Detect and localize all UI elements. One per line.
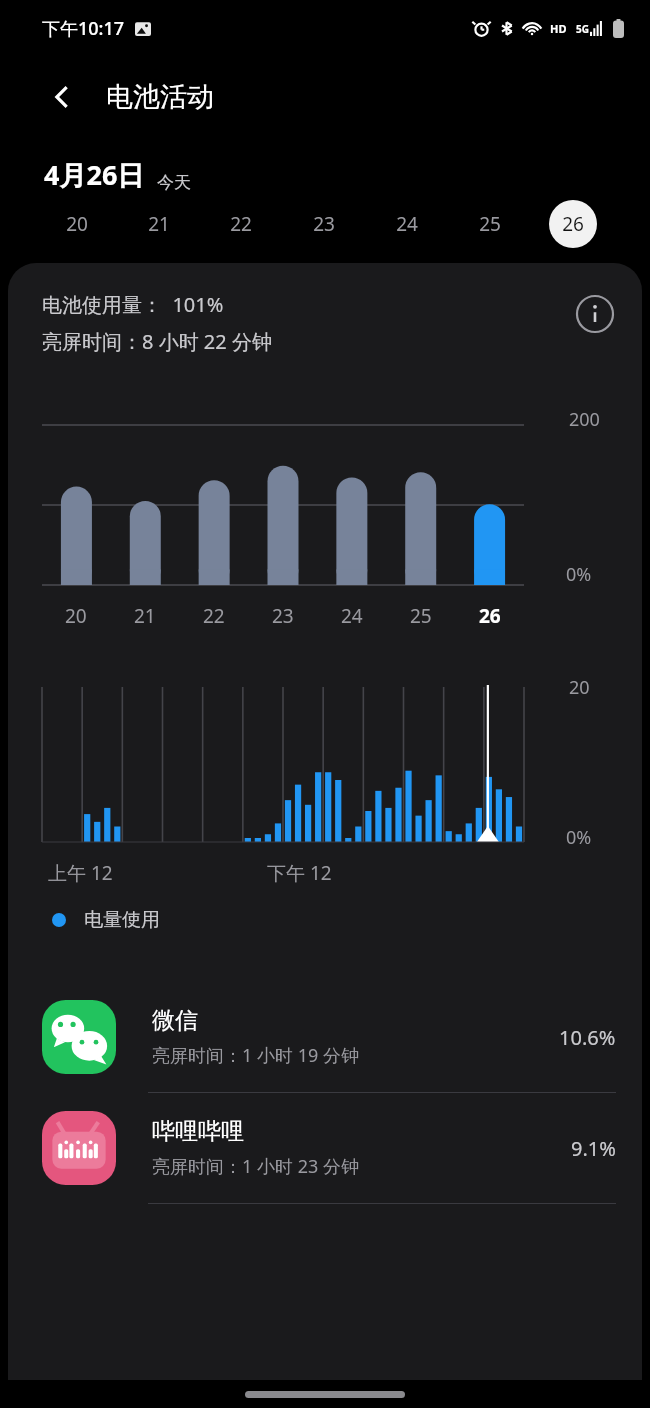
staticText: 23 xyxy=(272,603,294,629)
staticText: 下午10:17 xyxy=(42,16,125,41)
staticText: 200 xyxy=(569,407,600,432)
staticText: 今天 xyxy=(157,172,191,193)
staticText: 20 xyxy=(66,211,88,237)
button[interactable]: 23 xyxy=(282,193,365,255)
staticText: 电池使用量： 101% xyxy=(42,291,224,318)
staticText: 21 xyxy=(134,603,156,629)
staticText: 22 xyxy=(203,603,225,629)
staticText: 电池活动 xyxy=(106,80,214,114)
staticText: 23 xyxy=(313,211,335,237)
button[interactable]: 20 xyxy=(36,193,118,255)
button[interactable]: Back xyxy=(38,73,86,121)
staticText: 26 xyxy=(562,211,584,237)
staticText: 5G xyxy=(576,22,589,36)
staticText: 微信 xyxy=(152,1006,198,1035)
staticText: 25 xyxy=(479,211,501,237)
staticText: 25 xyxy=(410,603,432,629)
staticText: 21 xyxy=(148,211,170,237)
button[interactable]: 24 xyxy=(365,193,448,255)
staticText: 亮屏时间：1 小时 23 分钟 xyxy=(152,1154,359,1179)
staticText: 20 xyxy=(569,675,590,700)
staticText: 26 xyxy=(479,603,501,629)
staticText: 0% xyxy=(566,825,592,850)
staticText: 4月26日 xyxy=(44,156,145,193)
button[interactable]: Information xyxy=(572,291,618,337)
staticText: 上午 12 xyxy=(48,860,113,886)
staticText: 22 xyxy=(230,211,252,237)
button[interactable]: 25 xyxy=(448,193,531,255)
staticText: 0% xyxy=(566,562,592,587)
staticText: 亮屏时间：1 小时 19 分钟 xyxy=(152,1043,359,1068)
staticText: 20 xyxy=(65,603,87,629)
button[interactable]: 21 xyxy=(118,193,200,255)
staticText: 下午 12 xyxy=(267,860,332,886)
staticText: HD xyxy=(550,21,567,36)
button[interactable]: 哔哩哔哩 xyxy=(8,1093,642,1204)
staticText: 电量使用 xyxy=(84,908,160,932)
staticText: 哔哩哔哩 xyxy=(152,1117,244,1146)
button[interactable]: 26 xyxy=(531,193,614,255)
button[interactable]: 微信 xyxy=(8,982,642,1093)
staticText: 24 xyxy=(396,211,418,237)
staticText: 9.1% xyxy=(571,1135,616,1162)
staticText: 10.6% xyxy=(559,1024,616,1051)
staticText: 24 xyxy=(341,603,363,629)
staticText: 亮屏时间：8 小时 22 分钟 xyxy=(42,328,272,355)
button[interactable]: 22 xyxy=(200,193,282,255)
